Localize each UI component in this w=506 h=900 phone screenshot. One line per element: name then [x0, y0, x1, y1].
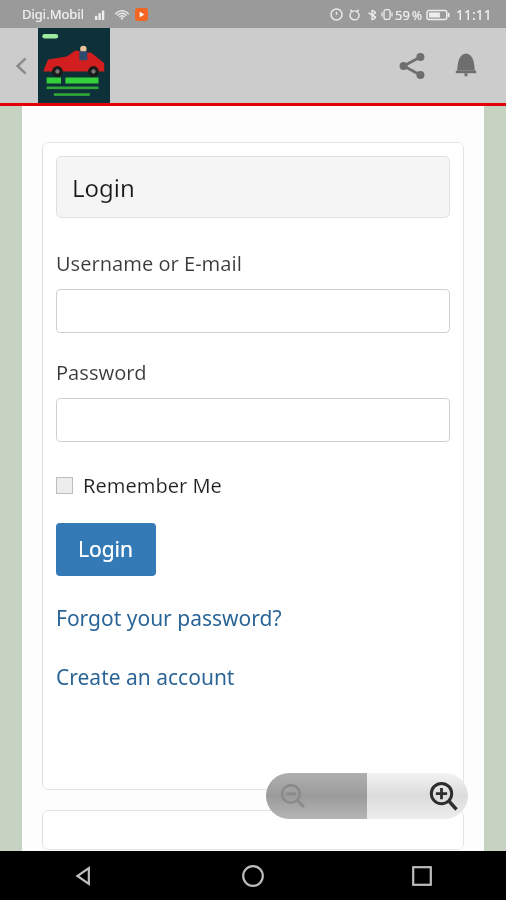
staticText: Login: [72, 171, 135, 204]
button[interactable]: Home: [168, 851, 337, 900]
staticText: Login: [78, 535, 134, 564]
staticText: Remember Me: [83, 472, 222, 499]
staticText: Digi.Mobil: [22, 5, 85, 23]
button[interactable]: Zoom in: [367, 773, 468, 819]
staticText: Create an account: [56, 663, 235, 692]
staticText: Forgot your password?: [56, 604, 282, 633]
staticText: 59: [395, 6, 410, 24]
button[interactable]: Login: [56, 523, 156, 576]
button[interactable]: Create an account: [56, 661, 235, 694]
button[interactable]: Home logo: [38, 28, 110, 103]
staticText: 11:11: [456, 5, 492, 24]
button[interactable]: [56, 289, 450, 333]
staticText: Password: [56, 359, 147, 386]
staticText: %: [412, 7, 422, 23]
button[interactable]: Back: [0, 851, 168, 900]
button[interactable]: Recents: [337, 851, 506, 900]
button[interactable]: [56, 398, 450, 442]
button[interactable]: Forgot your password?: [56, 602, 282, 635]
button[interactable]: Notifications: [442, 42, 490, 90]
button[interactable]: Remember Me: [56, 470, 222, 501]
button[interactable]: Zoom out: [266, 773, 367, 819]
staticText: Username or E-mail: [56, 250, 242, 277]
button[interactable]: Share: [388, 42, 436, 90]
button[interactable]: Back: [0, 44, 44, 88]
